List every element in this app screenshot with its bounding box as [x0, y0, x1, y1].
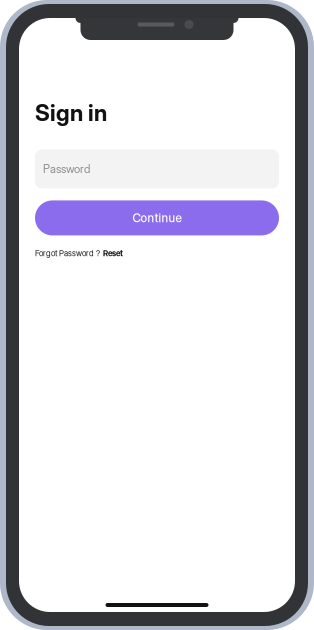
button[interactable]: Reset: [103, 248, 123, 258]
staticText: Password: [43, 162, 90, 176]
staticText: Sign in: [35, 99, 107, 126]
button[interactable]: Continue: [35, 200, 279, 235]
staticText: Forgot Password ?: [35, 248, 100, 258]
staticText: Continue: [132, 211, 181, 225]
staticText: Reset: [103, 248, 123, 258]
